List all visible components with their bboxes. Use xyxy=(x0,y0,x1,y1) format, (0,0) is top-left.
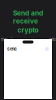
staticText: Transfer crypto between wallets xyxy=(0,37,55,42)
staticText: Send and receive xyxy=(13,9,43,25)
staticText: Send xyxy=(7,46,16,51)
staticText: in seconds, with low fees. xyxy=(6,43,49,48)
staticText: crypto xyxy=(17,26,38,34)
